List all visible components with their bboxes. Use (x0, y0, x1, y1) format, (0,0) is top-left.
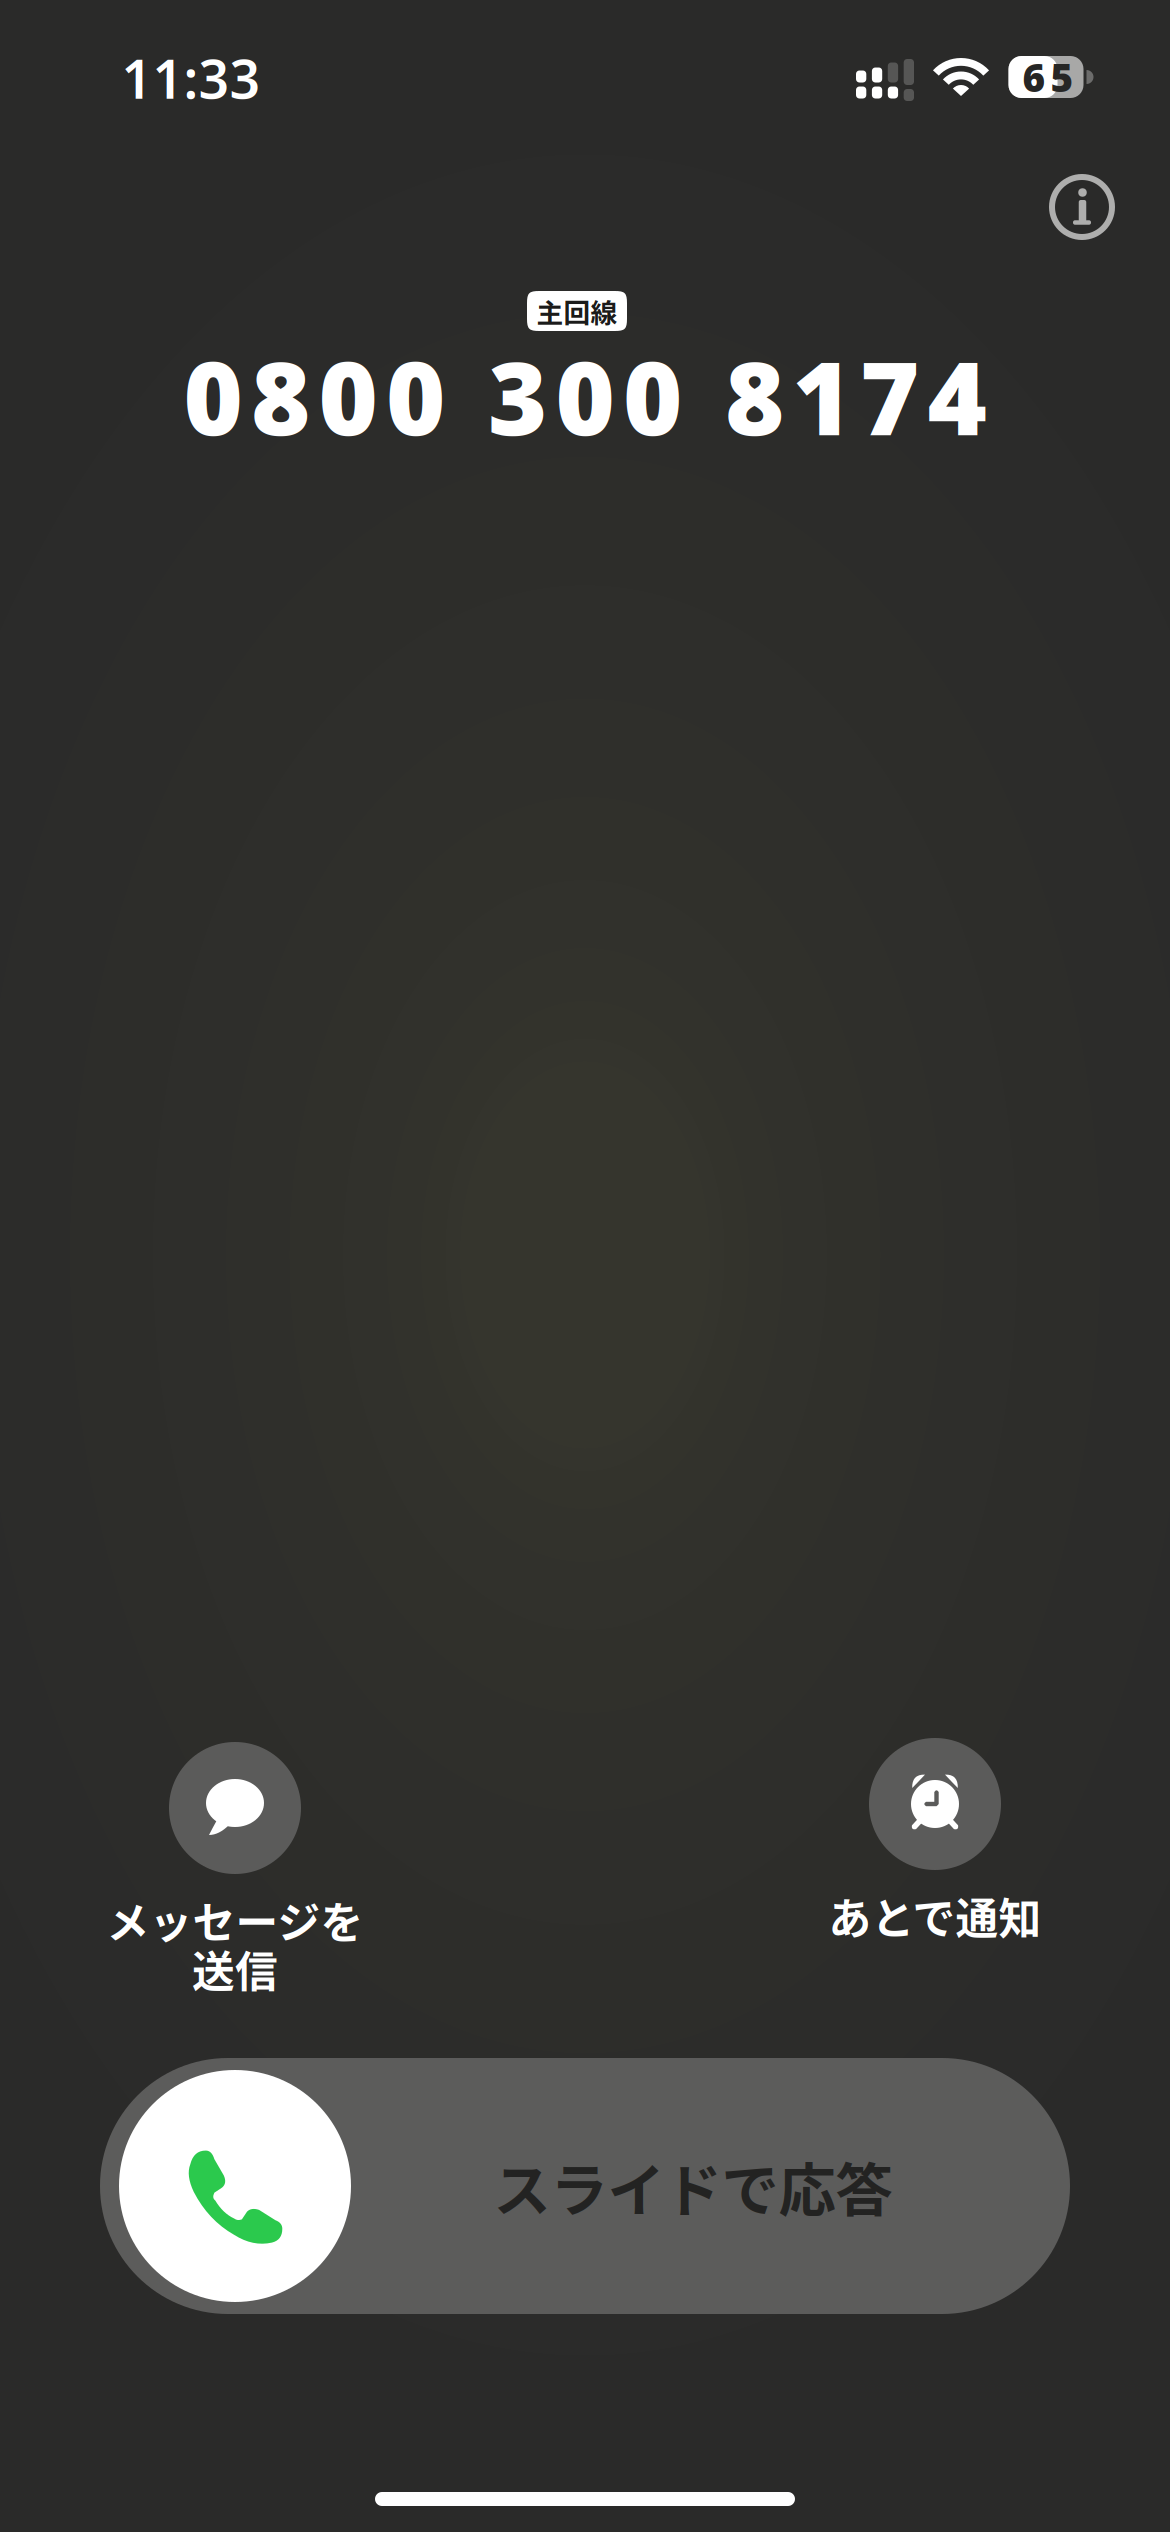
staticText: 65 (1022, 51, 1073, 103)
button[interactable]: あとで通知 (725, 1738, 1145, 2068)
staticText: スライドで応答 (493, 2144, 892, 2227)
staticText: あとで通知 (828, 1885, 1041, 1947)
staticText: 0800 300 8174 (183, 329, 986, 463)
button[interactable]: 通話の詳細 (1034, 159, 1130, 255)
button[interactable]: メッセージを送信 (25, 1742, 445, 2072)
button[interactable]: スライドで応答 (100, 2058, 1070, 2314)
staticText: メッセージを (106, 1889, 363, 1951)
staticText: 11:33 (121, 43, 260, 113)
staticText: 主回線 (536, 292, 617, 330)
staticText: 送信 (192, 1938, 278, 2000)
